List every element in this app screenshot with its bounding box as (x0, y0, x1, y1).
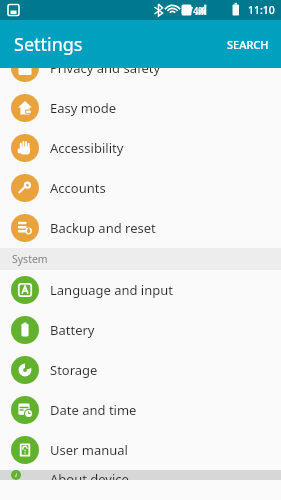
staticText: User manual (50, 441, 128, 459)
staticText: Settings (14, 32, 83, 57)
staticText: SEARCH (227, 37, 269, 52)
button[interactable]: SEARCH (215, 27, 281, 62)
button[interactable]: Date and time (0, 390, 281, 430)
button[interactable]: Storage (0, 350, 281, 390)
button[interactable]: Easy mode (0, 88, 281, 128)
staticText: Storage (50, 361, 98, 379)
staticText: Backup and reset (50, 219, 156, 237)
staticText: Battery (50, 321, 95, 339)
staticText: System (12, 252, 48, 266)
staticText: 74% (188, 4, 206, 16)
button[interactable]: About device (0, 470, 281, 480)
button[interactable]: Language and input (0, 270, 281, 310)
staticText: Date and time (50, 401, 137, 419)
button[interactable]: Accounts (0, 168, 281, 208)
staticText: Accounts (50, 179, 106, 197)
button[interactable]: Privacy and safety (0, 68, 281, 88)
button[interactable]: Backup and reset (0, 208, 281, 248)
button[interactable]: Battery (0, 310, 281, 350)
staticText: Easy mode (50, 99, 117, 117)
staticText: Language and input (50, 281, 173, 299)
staticText: Privacy and safety (50, 68, 161, 77)
staticText: Accessibility (50, 139, 124, 157)
staticText: About device (50, 470, 129, 480)
button[interactable]: User manual (0, 430, 281, 470)
staticText: 11:10 (248, 3, 275, 17)
button[interactable]: Accessibility (0, 128, 281, 168)
